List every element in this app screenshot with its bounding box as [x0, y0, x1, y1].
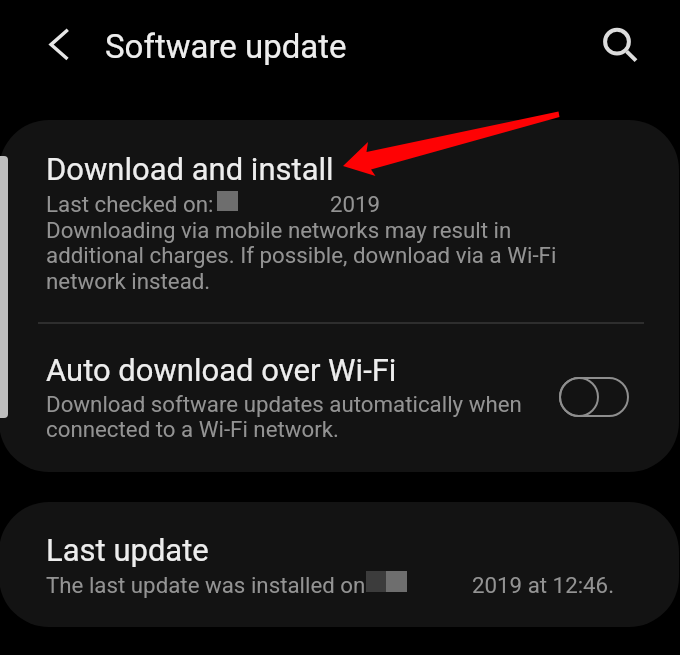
button[interactable]: Navigate up [29, 17, 84, 72]
button[interactable]: Download and install [0, 120, 679, 322]
staticText: Download and install [46, 151, 334, 187]
button[interactable]: Auto download over Wi-Fi, off [559, 376, 630, 418]
staticText: Downloading via mobile networks may resu… [46, 217, 566, 295]
staticText: Software update [105, 27, 347, 66]
button[interactable]: Auto download over Wi-Fi [0, 324, 679, 472]
button[interactable]: Search [590, 14, 645, 69]
staticText: Last checked on: [46, 191, 214, 217]
staticText: Download software updates automatically … [46, 391, 526, 443]
staticText: Auto download over Wi-Fi [46, 352, 397, 388]
staticText: 2019 at 12:46. [472, 572, 615, 598]
staticText: 2019 [330, 191, 381, 217]
staticText: The last update was installed on [46, 572, 366, 598]
staticText: Last update [46, 532, 209, 568]
button[interactable]: Last update [0, 502, 679, 627]
